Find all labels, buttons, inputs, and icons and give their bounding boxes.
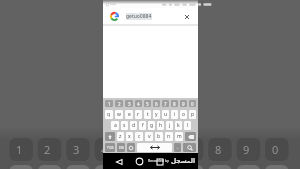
staticText: w: [117, 111, 121, 118]
staticText: j: [169, 122, 171, 129]
staticText: u: [164, 111, 168, 118]
staticText: Recorded by: [148, 158, 169, 163]
button[interactable]: b: [155, 132, 163, 141]
staticText: 7: [164, 101, 167, 107]
button[interactable]: k: [175, 121, 182, 130]
button[interactable]: Language: [117, 143, 125, 152]
button[interactable]: 8: [171, 100, 178, 107]
staticText: 7: [186, 142, 193, 157]
button[interactable]: a: [111, 121, 119, 130]
button[interactable]: t: [144, 110, 151, 119]
staticText: المسجل: [171, 157, 196, 164]
button[interactable]: Emoji: [127, 143, 135, 152]
staticText: 3: [73, 142, 80, 157]
button[interactable]: f: [139, 121, 146, 130]
staticText: v: [148, 133, 151, 140]
staticText: 2: [118, 101, 121, 107]
button[interactable]: o: [180, 110, 187, 119]
button[interactable]: l: [184, 121, 191, 130]
button[interactable]: Clear search: [181, 11, 192, 22]
staticText: .: [177, 144, 179, 151]
button[interactable]: e: [125, 110, 133, 119]
button[interactable]: Home: [133, 155, 146, 168]
staticText: d: [132, 122, 136, 129]
staticText: 9: [182, 101, 185, 107]
button[interactable]: x: [126, 132, 133, 141]
staticText: 5: [130, 142, 137, 157]
staticText: 6: [158, 142, 165, 157]
staticText: 8: [215, 142, 222, 157]
staticText: k: [177, 122, 180, 129]
staticText: z: [119, 133, 122, 140]
button[interactable]: s: [121, 121, 128, 130]
staticText: 9: [243, 142, 250, 157]
staticText: n: [167, 133, 171, 140]
staticText: 3: [128, 101, 131, 107]
button[interactable]: h: [157, 121, 164, 130]
staticText: 1: [108, 101, 111, 107]
staticText: 2: [44, 142, 51, 157]
staticText: e: [128, 111, 131, 118]
button[interactable]: Back: [112, 155, 125, 168]
button[interactable]: z: [117, 132, 124, 141]
button[interactable]: w: [115, 110, 123, 119]
button[interactable]: v: [145, 132, 153, 141]
button[interactable]: p: [189, 110, 196, 119]
button[interactable]: Space: [137, 143, 172, 152]
staticText: 4: [137, 101, 140, 107]
staticText: 1: [16, 142, 23, 157]
button[interactable]: j: [166, 121, 173, 130]
staticText: o: [182, 111, 186, 118]
staticText: x: [128, 133, 131, 140]
staticText: g: [150, 122, 154, 129]
staticText: l: [187, 122, 189, 129]
button[interactable]: 4: [135, 100, 142, 107]
button[interactable]: n: [165, 132, 173, 141]
staticText: t: [147, 111, 149, 118]
button[interactable]: Period: [174, 143, 181, 152]
button[interactable]: Recent apps: [153, 155, 166, 168]
staticText: q: [107, 111, 111, 118]
button[interactable]: d: [130, 121, 137, 130]
staticText: 0: [272, 142, 279, 157]
button[interactable]: m: [175, 132, 183, 141]
staticText: p: [191, 111, 195, 118]
staticText: 4: [101, 142, 108, 157]
staticText: y: [155, 111, 158, 118]
button[interactable]: Symbols: [105, 143, 115, 152]
staticText: i: [174, 111, 176, 118]
staticText: f: [142, 122, 144, 129]
staticText: getuo0884: [126, 13, 152, 20]
staticText: c: [138, 133, 141, 140]
staticText: 0: [191, 101, 194, 107]
staticText: b: [157, 133, 161, 140]
button[interactable]: 6: [153, 100, 160, 107]
button[interactable]: 3: [125, 100, 133, 107]
staticText: EN: [119, 145, 124, 150]
button[interactable]: q: [105, 110, 113, 119]
staticText: r: [137, 111, 140, 118]
staticText: ?123: [107, 146, 114, 150]
button[interactable]: 1: [105, 100, 113, 107]
button[interactable]: i: [171, 110, 178, 119]
button[interactable]: 9: [180, 100, 187, 107]
staticText: h: [159, 122, 163, 129]
staticText: a: [114, 122, 117, 129]
button[interactable]: u: [162, 110, 169, 119]
staticText: 6: [155, 101, 158, 107]
button[interactable]: r: [135, 110, 142, 119]
staticText: 5: [146, 101, 149, 107]
button[interactable]: Backspace: [185, 132, 196, 141]
button[interactable]: c: [135, 132, 143, 141]
button[interactable]: 7: [162, 100, 169, 107]
button[interactable]: 2: [115, 100, 123, 107]
staticText: s: [123, 122, 126, 129]
button[interactable]: 5: [144, 100, 151, 107]
button[interactable]: y: [153, 110, 160, 119]
button[interactable]: Search: [183, 143, 196, 152]
staticText: m: [177, 133, 182, 140]
button[interactable]: Shift: [105, 132, 115, 141]
button[interactable]: 0: [189, 100, 196, 107]
staticText: 8: [173, 101, 176, 107]
button[interactable]: g: [148, 121, 155, 130]
